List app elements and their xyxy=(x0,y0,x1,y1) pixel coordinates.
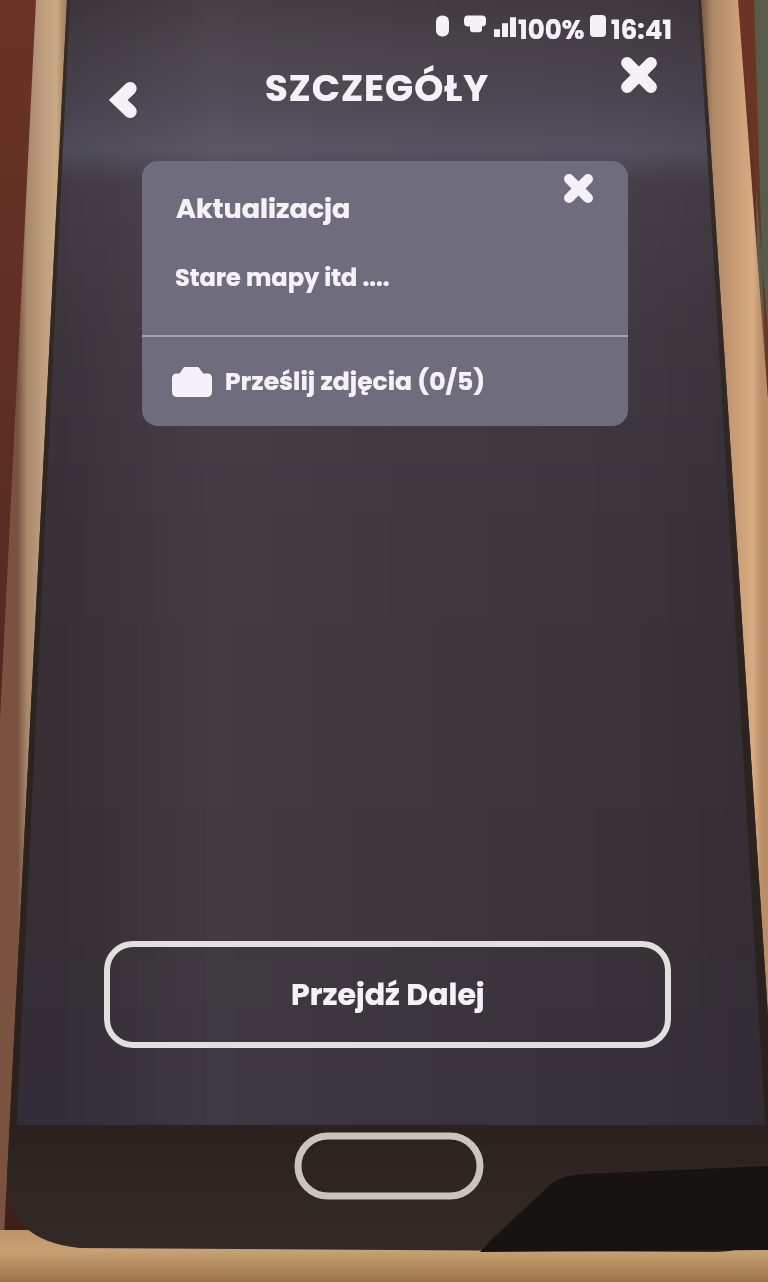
staticText: Stare mapy itd .... xyxy=(175,261,390,295)
staticText: SZCZEGÓŁY xyxy=(265,62,490,114)
button[interactable]: Dismiss update xyxy=(555,165,601,211)
staticText: 100% xyxy=(518,12,585,40)
staticText: Przejdź Dalej xyxy=(291,974,485,1016)
button[interactable]: Back xyxy=(99,76,147,124)
staticText: 16:41 xyxy=(611,12,673,40)
button[interactable]: Prześlij zdjęcia (0/5) xyxy=(142,337,628,426)
staticText: Prześlij zdjęcia (0/5) xyxy=(225,364,486,399)
button[interactable]: Close xyxy=(614,50,664,100)
staticText: Aktualizacja xyxy=(176,190,351,228)
button[interactable]: Przejdź Dalej xyxy=(104,941,671,1048)
